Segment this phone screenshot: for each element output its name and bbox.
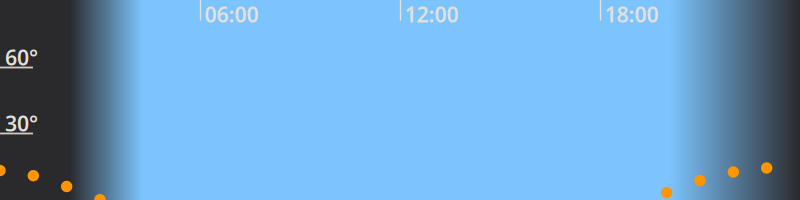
- staticText: 18:00: [604, 0, 658, 28]
- staticText: 60°: [5, 43, 38, 71]
- staticText: 06:00: [204, 0, 258, 28]
- staticText: 12:00: [404, 0, 458, 28]
- staticText: 30°: [5, 109, 38, 137]
